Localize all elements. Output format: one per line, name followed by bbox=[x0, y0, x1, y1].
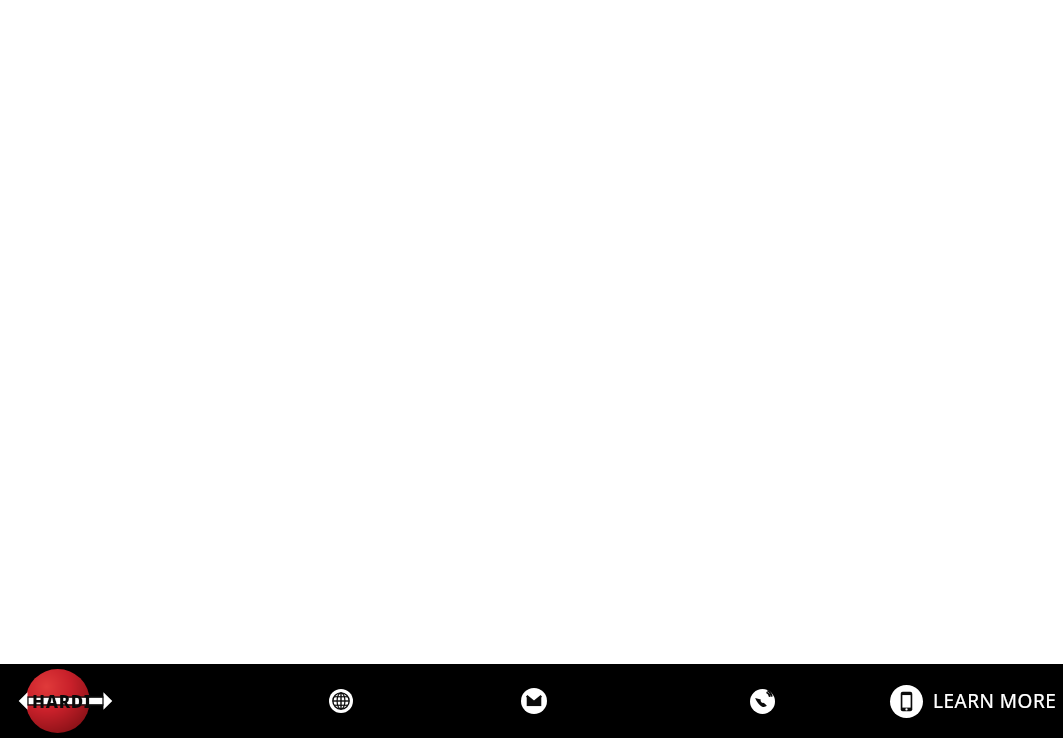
button[interactable]: LEARN MORE bbox=[890, 673, 1057, 729]
button[interactable]: HARDI home bbox=[14, 665, 118, 737]
button[interactable]: Call bbox=[739, 678, 785, 724]
button[interactable]: Email bbox=[511, 678, 557, 724]
staticText: HARDI bbox=[32, 690, 92, 713]
staticText: LEARN MORE bbox=[933, 688, 1057, 714]
button[interactable]: Website bbox=[318, 678, 364, 724]
